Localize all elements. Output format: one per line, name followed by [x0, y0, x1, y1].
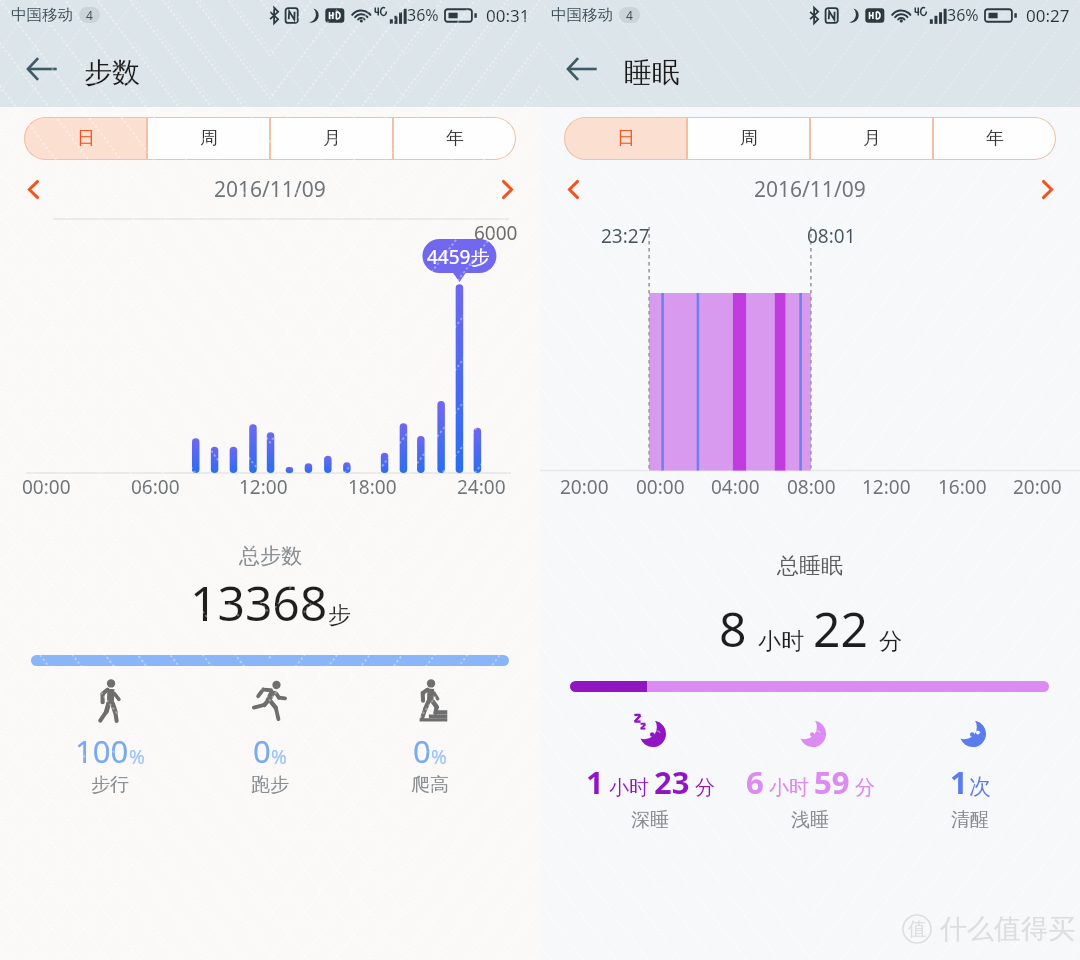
staticText: 步行 [91, 773, 129, 797]
staticText: 深睡 [631, 808, 669, 832]
staticText: 08:00 [787, 474, 836, 500]
staticText: 步数 [84, 55, 140, 90]
staticText: % [129, 744, 145, 770]
staticText: 1 [950, 761, 968, 803]
button[interactable]: 1 [570, 709, 730, 832]
staticText: 爬高 [411, 773, 449, 797]
staticText: 小时 [758, 627, 804, 656]
staticText: 跑步 [251, 773, 289, 797]
staticText: 月 [863, 127, 881, 150]
staticText: 日 [617, 127, 635, 150]
staticText: 月 [323, 127, 341, 150]
staticText: 4 [86, 7, 93, 23]
staticText: 08:01 [807, 223, 856, 249]
staticText: 睡眠 [624, 55, 680, 90]
button[interactable]: 年 [933, 117, 1056, 160]
staticText: 23 [654, 761, 690, 803]
staticText: 清醒 [951, 808, 989, 832]
staticText: 1 [586, 761, 604, 803]
staticText: 周 [200, 127, 218, 150]
staticText: 00:31 [486, 4, 530, 27]
staticText: 0 [413, 730, 431, 772]
staticText: 12:00 [239, 474, 288, 500]
staticText: 日 [77, 127, 95, 150]
staticText: 分 [879, 627, 902, 656]
staticText: 6000 [474, 220, 518, 246]
staticText: 总睡眠 [777, 552, 843, 580]
staticText: 周 [740, 127, 758, 150]
staticText: 00:00 [22, 474, 71, 500]
button[interactable]: 周 [687, 117, 810, 160]
button[interactable]: 0 [350, 678, 510, 797]
staticText: 00:00 [636, 474, 685, 500]
staticText: 4459步 [427, 244, 490, 270]
button[interactable]: Previous day [7, 161, 59, 218]
staticText: 24:00 [457, 474, 506, 500]
button[interactable]: Back [554, 47, 610, 91]
button[interactable]: Next day [1021, 161, 1073, 218]
staticText: 小时 [769, 775, 809, 800]
button[interactable]: 0 [190, 678, 350, 797]
staticText: 6 [746, 761, 764, 803]
staticText: 中国移动 [11, 5, 73, 25]
staticText: 8 [719, 596, 747, 661]
staticText: 浅睡 [791, 808, 829, 832]
staticText: 年 [986, 127, 1004, 150]
staticText: 04:00 [711, 474, 760, 500]
button[interactable]: 100 [30, 678, 190, 797]
staticText: 00:27 [1026, 4, 1070, 27]
staticText: 2016/11/09 [214, 175, 326, 204]
staticText: 22 [813, 596, 868, 661]
button[interactable]: Next day [481, 161, 533, 218]
button[interactable]: Previous day [547, 161, 599, 218]
staticText: 16:00 [938, 474, 987, 500]
button[interactable]: Back [14, 47, 70, 91]
staticText: 13368 [190, 570, 328, 635]
staticText: 分 [695, 775, 715, 800]
button[interactable]: 月 [810, 117, 933, 160]
button[interactable]: 周 [147, 117, 270, 160]
staticText: 100 [75, 730, 129, 772]
staticText: 次 [969, 773, 991, 801]
button[interactable]: 1 [890, 709, 1050, 832]
staticText: 小时 [609, 775, 649, 800]
staticText: 中国移动 [551, 5, 613, 25]
button[interactable]: 月 [270, 117, 393, 160]
staticText: 分 [855, 775, 875, 800]
staticText: 12:00 [862, 474, 911, 500]
button[interactable]: 年 [393, 117, 516, 160]
staticText: 总步数 [239, 543, 302, 569]
staticText: % [271, 744, 287, 770]
staticText: 2016/11/09 [754, 175, 866, 204]
staticText: 值 [908, 918, 926, 941]
staticText: 年 [446, 127, 464, 150]
staticText: 20:00 [560, 474, 609, 500]
staticText: 23:27 [601, 223, 650, 249]
staticText: 20:00 [1013, 474, 1062, 500]
staticText: 什么值得买 [940, 912, 1075, 946]
staticText: 36% [407, 4, 439, 26]
button[interactable]: 日 [24, 117, 147, 160]
button[interactable]: 日 [564, 117, 687, 160]
button[interactable]: 6 [730, 709, 890, 832]
staticText: 06:00 [131, 474, 180, 500]
staticText: 18:00 [348, 474, 397, 500]
staticText: 59 [814, 761, 850, 803]
staticText: 36% [947, 4, 979, 26]
staticText: 步 [328, 601, 351, 630]
staticText: 4 [626, 7, 633, 23]
staticText: % [431, 744, 447, 770]
staticText: 0 [253, 730, 271, 772]
